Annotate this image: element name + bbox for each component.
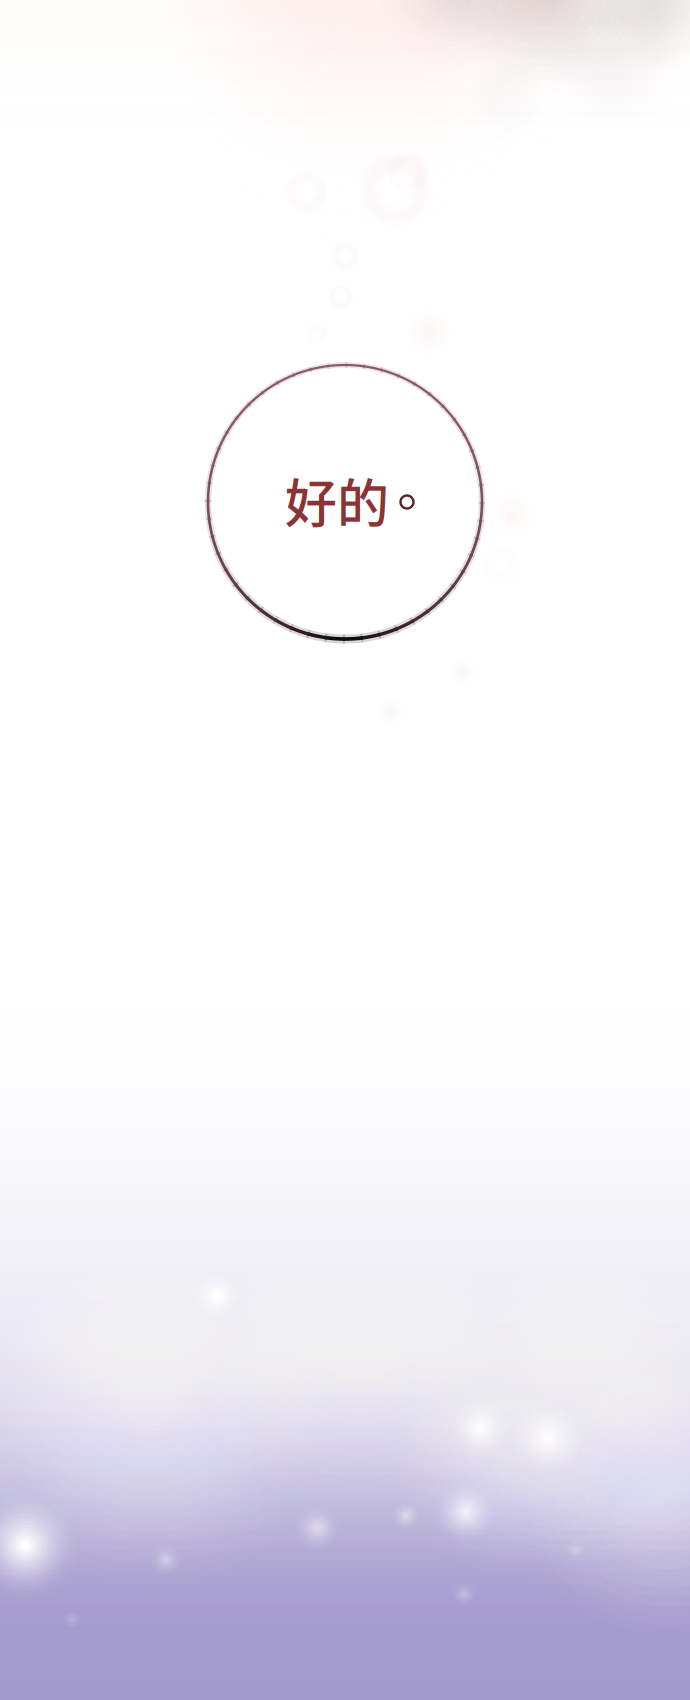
staticText: 好的	[285, 462, 389, 538]
